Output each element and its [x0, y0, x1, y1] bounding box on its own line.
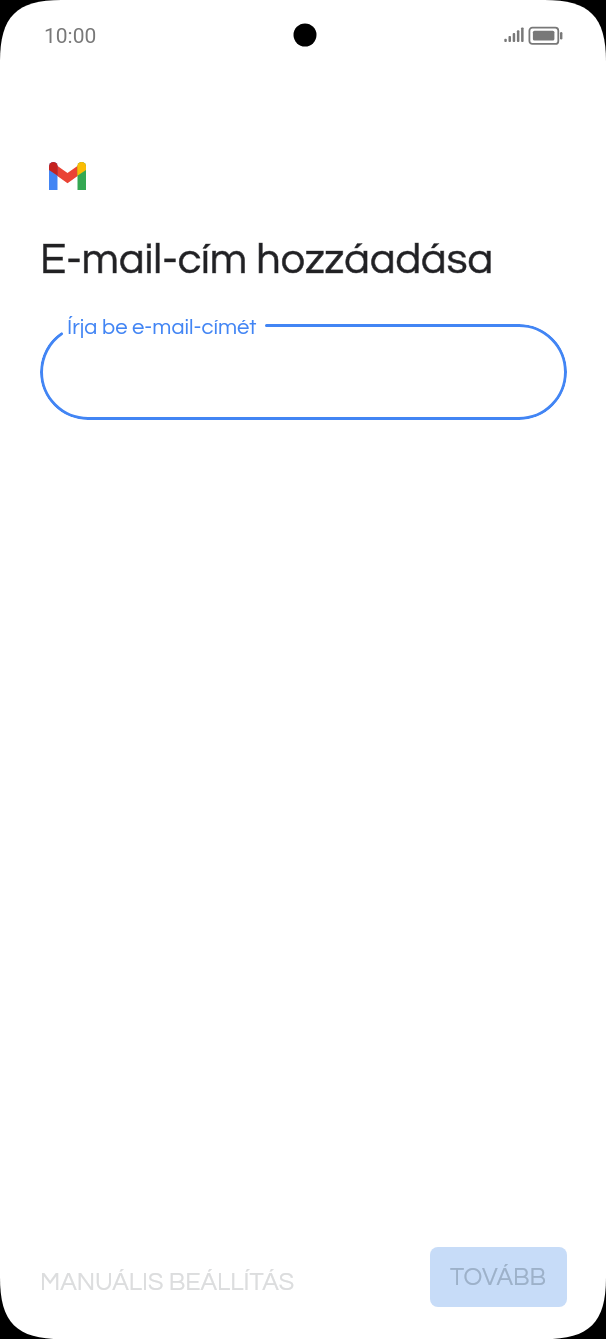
button[interactable]: MANUÁLIS BEÁLLÍTÁS	[24, 1259, 311, 1305]
staticText: E-mail-cím hozzáadása	[40, 238, 493, 282]
staticText: Írja be e-mail-címét	[67, 316, 257, 339]
staticText: TOVÁBB	[450, 1264, 547, 1290]
button[interactable]: Írja be e-mail-címét	[40, 324, 567, 420]
staticText: E-mail-cím hozzáadása	[40, 238, 493, 282]
staticText: 10:00	[44, 24, 97, 49]
button[interactable]: TOVÁBB	[430, 1247, 567, 1307]
staticText: MANUÁLIS BEÁLLÍTÁS	[40, 1269, 295, 1295]
other: Gmail	[49, 162, 86, 190]
